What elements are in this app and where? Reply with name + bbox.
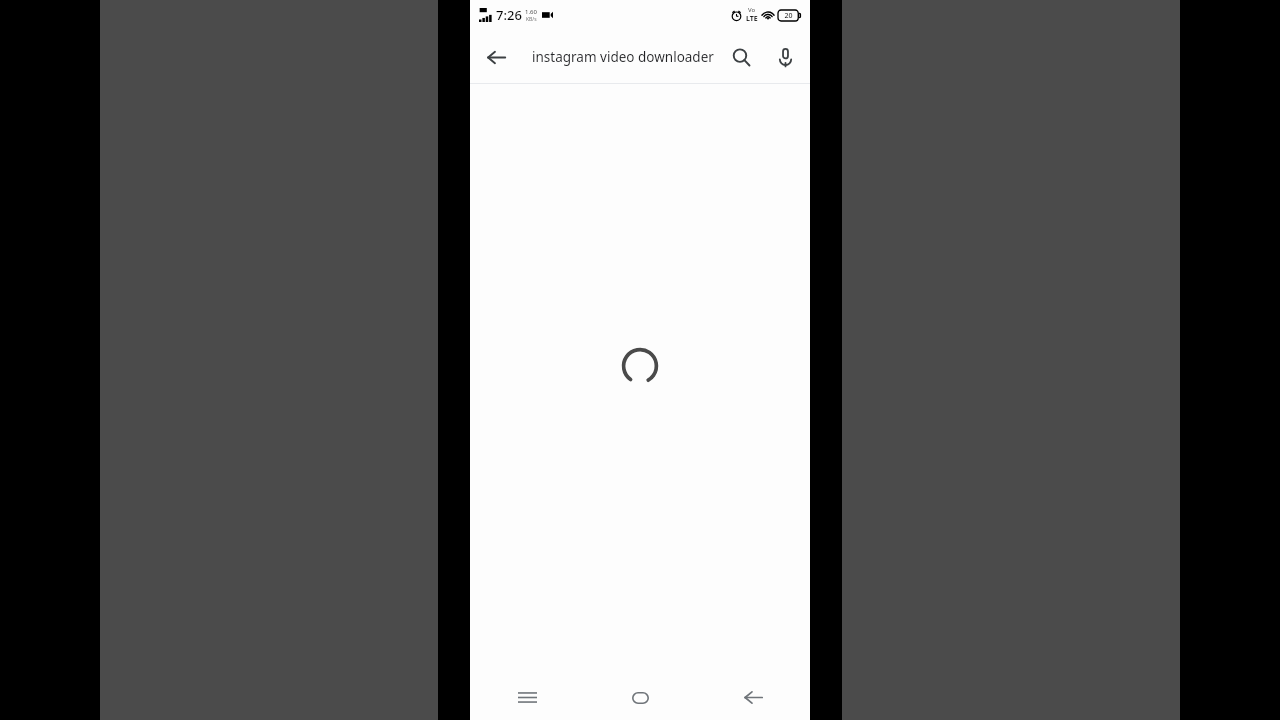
button[interactable]: instagram video downloader xyxy=(518,30,718,83)
staticText: instagram video downloader xyxy=(532,48,714,66)
staticText: Vo xyxy=(748,6,756,14)
staticText: 7:26 xyxy=(496,6,522,24)
staticText: 20 xyxy=(784,11,793,21)
button[interactable]: Home xyxy=(584,675,697,720)
button[interactable]: Recent apps xyxy=(470,675,584,720)
button[interactable]: Back xyxy=(697,675,810,720)
staticText: LTE xyxy=(746,14,758,24)
staticText: 1.60 xyxy=(525,8,537,16)
button[interactable]: Voice search xyxy=(762,34,808,80)
staticText: KB/s xyxy=(526,16,537,23)
button[interactable]: Back xyxy=(472,33,520,81)
button[interactable]: Search xyxy=(718,34,764,80)
